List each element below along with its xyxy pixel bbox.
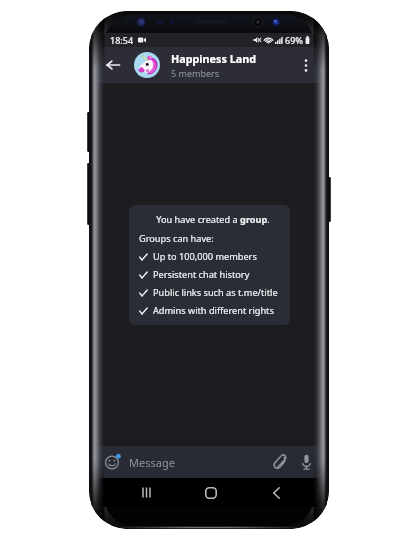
button[interactable]: Attach xyxy=(269,452,289,472)
staticText: Groups can have: xyxy=(139,232,214,245)
staticText: Admins with different rights xyxy=(153,304,274,317)
staticText: Public links such as t.me/title xyxy=(153,286,278,299)
staticText: 69% xyxy=(285,34,303,46)
staticText: Persistent chat history xyxy=(153,268,250,281)
staticText: 5 members xyxy=(171,67,220,79)
button[interactable]: Group photo xyxy=(134,52,160,78)
button[interactable]: Back xyxy=(100,52,126,78)
button[interactable]: Emoji xyxy=(104,454,120,470)
staticText: Happiness Land xyxy=(171,51,257,66)
staticText: 18:54 xyxy=(110,34,134,46)
button[interactable]: More options xyxy=(294,53,318,77)
button[interactable]: Home xyxy=(196,478,226,507)
staticText: You have created a group. xyxy=(139,213,287,226)
button[interactable]: Back xyxy=(261,478,291,507)
button[interactable]: Voice message xyxy=(296,452,316,472)
staticText: Up to 100,000 members xyxy=(153,250,257,263)
button[interactable]: Recent apps xyxy=(131,478,161,507)
staticText: Message xyxy=(129,455,175,470)
